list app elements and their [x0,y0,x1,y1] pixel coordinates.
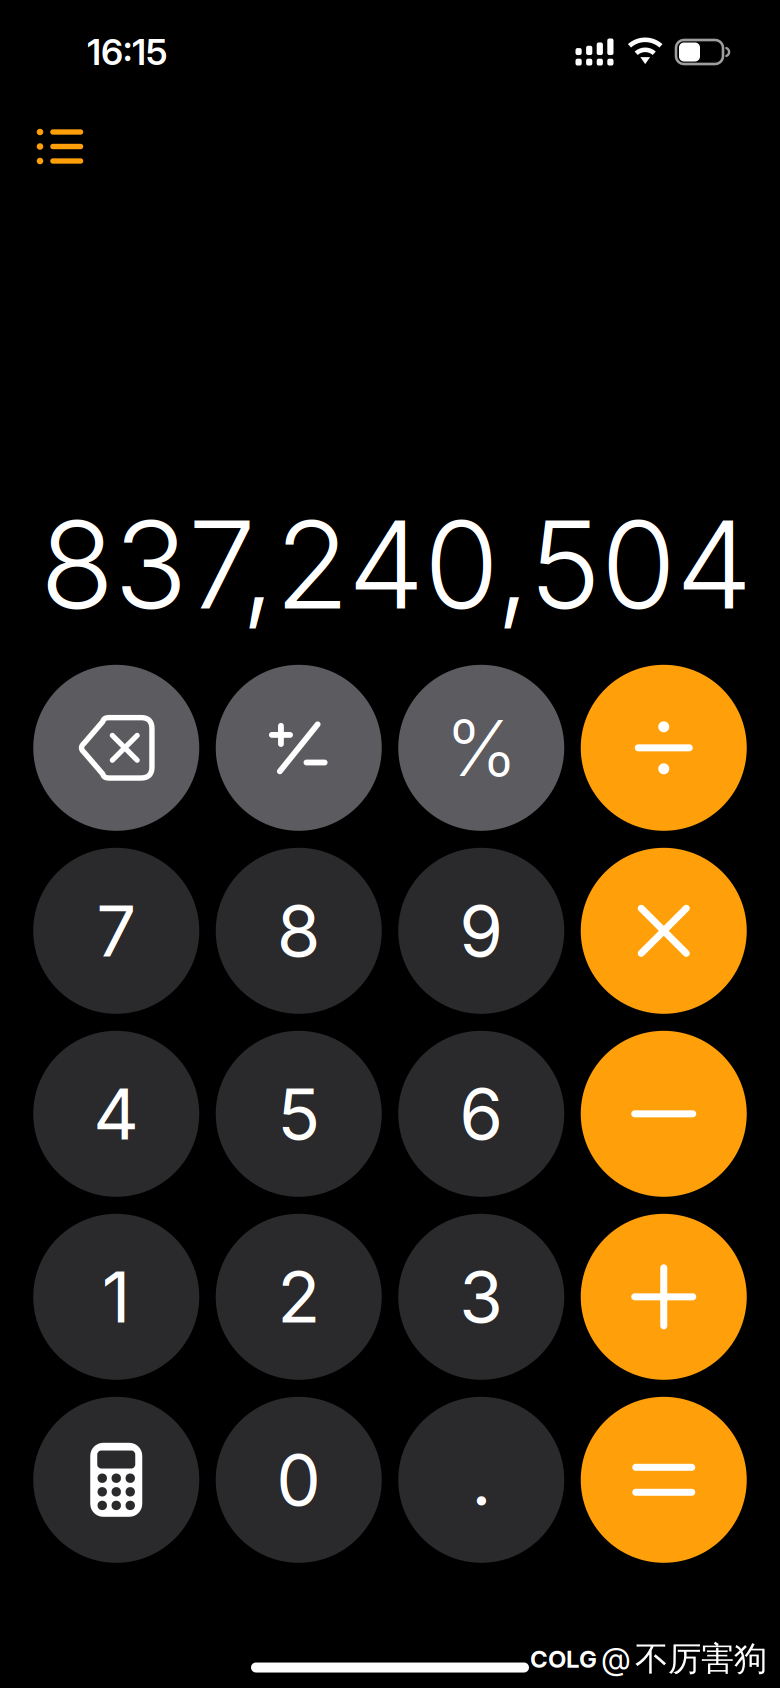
button[interactable]: History [29,118,91,175]
staticText: 5 [277,1071,320,1157]
staticText: 2 [277,1254,320,1340]
staticText: 9 [459,888,503,974]
button[interactable]: Decimal point [398,1397,564,1563]
staticText: @ [601,1640,631,1677]
staticText: 837,240,504 [40,491,752,638]
staticText: 6 [459,1071,503,1157]
staticText: 1 [102,1254,131,1340]
button[interactable]: 6 [398,1031,564,1197]
button[interactable]: Equals [581,1397,747,1563]
staticText: 7 [96,888,136,974]
button[interactable]: 5 [216,1031,382,1197]
staticText: 0 [276,1437,321,1523]
button[interactable]: Subtract [581,1031,747,1197]
button[interactable]: 9 [398,848,564,1014]
button[interactable]: Percent [398,665,564,831]
button[interactable]: Delete [33,665,199,831]
staticText: . [471,1437,491,1523]
staticText: 8 [277,888,321,974]
staticText: 3 [459,1254,503,1340]
button[interactable]: Calculator [33,1397,199,1563]
button[interactable]: 2 [216,1214,382,1380]
button[interactable]: 4 [33,1031,199,1197]
staticText: % [445,701,517,795]
button[interactable]: 7 [33,848,199,1014]
button[interactable]: 0 [216,1397,382,1563]
button[interactable]: Plus minus [216,665,382,831]
button[interactable]: 1 [33,1214,199,1380]
staticText: 4 [93,1071,139,1157]
button[interactable]: Add [581,1214,747,1380]
button[interactable]: 3 [398,1214,564,1380]
button[interactable]: Divide [581,665,747,831]
staticText: COLG [530,1644,597,1673]
staticText: 16:15 [87,30,168,74]
button[interactable]: Multiply [581,848,747,1014]
button[interactable]: 8 [216,848,382,1014]
staticText: 不厉害狗 [635,1638,767,1680]
